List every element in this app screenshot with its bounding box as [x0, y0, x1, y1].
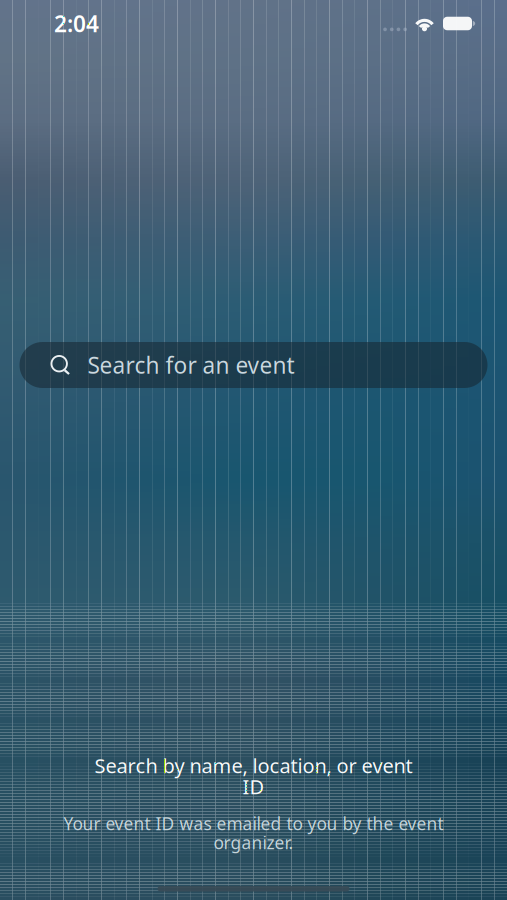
staticText: 2:04 [54, 8, 99, 38]
staticText: Your event ID was emailed to you by the … [63, 812, 443, 835]
staticText: ID [242, 773, 264, 800]
staticText: organizer. [213, 831, 293, 854]
button[interactable]: Search for an event [19, 342, 487, 388]
staticText: Search for an event [87, 350, 294, 380]
staticText: Search by name, location, or event [94, 752, 412, 779]
